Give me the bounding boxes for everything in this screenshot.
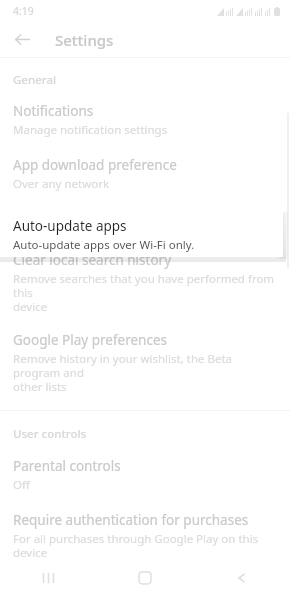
- staticText: Off: [13, 477, 30, 493]
- button[interactable]: App download preference: [0, 156, 290, 192]
- button[interactable]: Require authentication for purchases: [0, 511, 290, 560]
- button[interactable]: Recents: [0, 560, 96, 596]
- button[interactable]: Home: [96, 560, 193, 596]
- button[interactable]: Auto-update apps: [0, 212, 283, 257]
- staticText: General: [13, 72, 57, 88]
- button[interactable]: Notifications: [0, 102, 290, 138]
- button[interactable]: Parental controls: [0, 457, 290, 493]
- staticText: Over any network: [13, 176, 110, 192]
- staticText: Remove history in your wishlist, the Bet…: [13, 351, 277, 394]
- staticText: Parental controls: [13, 457, 121, 475]
- button[interactable]: Back: [8, 25, 37, 54]
- staticText: For all purchases through Google Play on…: [13, 531, 277, 560]
- button[interactable]: Clear local search history: [0, 251, 290, 314]
- staticText: Auto-update apps: [13, 217, 127, 235]
- staticText: Auto-update apps over Wi-Fi only.: [13, 237, 195, 253]
- staticText: Remove searches that you have performed …: [13, 271, 277, 314]
- staticText: Require authentication for purchases: [13, 511, 249, 529]
- staticText: Clear local search history: [13, 251, 172, 269]
- staticText: User controls: [13, 426, 87, 442]
- button[interactable]: Google Play preferences: [0, 331, 290, 394]
- staticText: Manage notification settings: [13, 122, 168, 138]
- staticText: Google Play preferences: [13, 331, 167, 349]
- staticText: Settings: [55, 30, 114, 50]
- staticText: App download preference: [13, 156, 177, 174]
- staticText: Notifications: [13, 102, 94, 120]
- staticText: 4:19: [13, 4, 34, 18]
